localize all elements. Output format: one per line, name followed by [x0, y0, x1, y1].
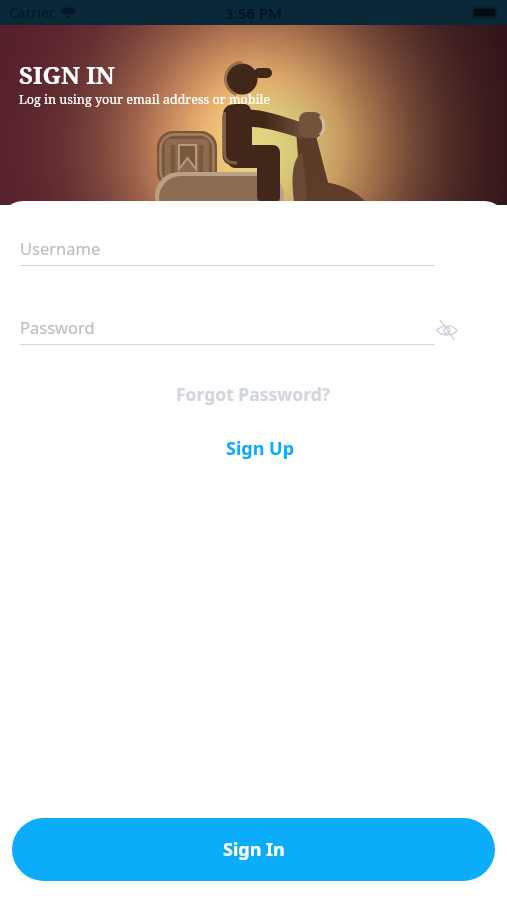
staticText: Carrier: [9, 3, 55, 22]
staticText: 3:56 PM: [225, 3, 282, 23]
button[interactable]: Show password: [432, 315, 462, 345]
staticText: Sign In: [223, 837, 285, 862]
staticText: SIGN IN: [19, 58, 115, 91]
staticText: Log in using your email address or mobil…: [19, 91, 271, 108]
button[interactable]: Sign In: [12, 818, 495, 881]
button[interactable]: Forgot Password?: [166, 378, 341, 410]
button[interactable]: Sign Up: [216, 432, 305, 465]
staticText: Password: [20, 316, 95, 338]
staticText: Username: [20, 237, 101, 259]
